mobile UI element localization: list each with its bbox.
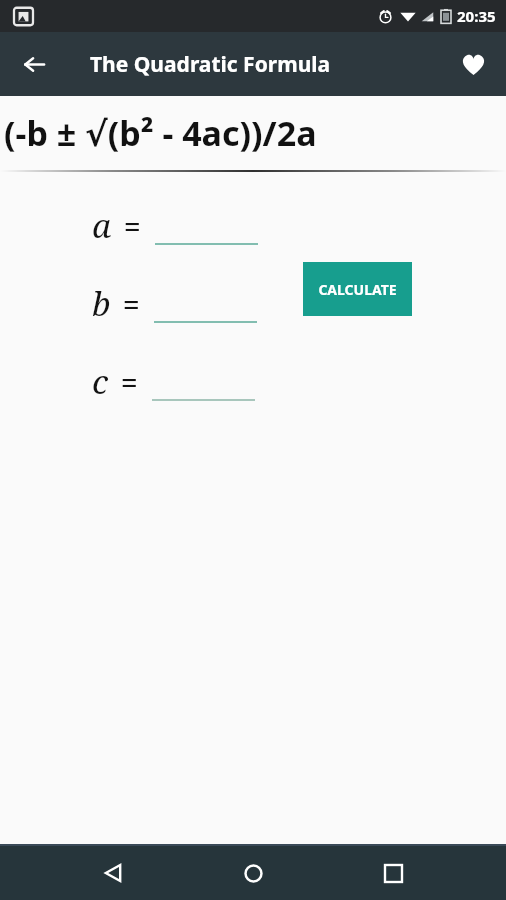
button[interactable]: Back — [86, 846, 140, 900]
staticText: b — [92, 281, 111, 326]
staticText: = — [123, 284, 140, 323]
button[interactable]: Value of a — [155, 205, 258, 245]
staticText: 20:35 — [457, 6, 496, 26]
button[interactable]: Favorite — [450, 41, 496, 87]
button[interactable]: Recent apps — [366, 846, 420, 900]
button[interactable]: Value of c — [152, 361, 255, 401]
staticText: (-b ± √(b² - 4ac))/2a — [4, 110, 317, 156]
button[interactable]: Home — [226, 846, 280, 900]
button[interactable]: Value of b — [154, 283, 257, 323]
staticText: a — [92, 203, 112, 248]
staticText: = — [124, 206, 141, 245]
staticText: = — [121, 362, 138, 401]
button[interactable]: CALCULATE — [303, 262, 412, 316]
button[interactable]: Back — [12, 42, 56, 86]
staticText: c — [92, 359, 109, 404]
staticText: The Quadratic Formula — [90, 50, 331, 79]
staticText: CALCULATE — [318, 280, 397, 299]
